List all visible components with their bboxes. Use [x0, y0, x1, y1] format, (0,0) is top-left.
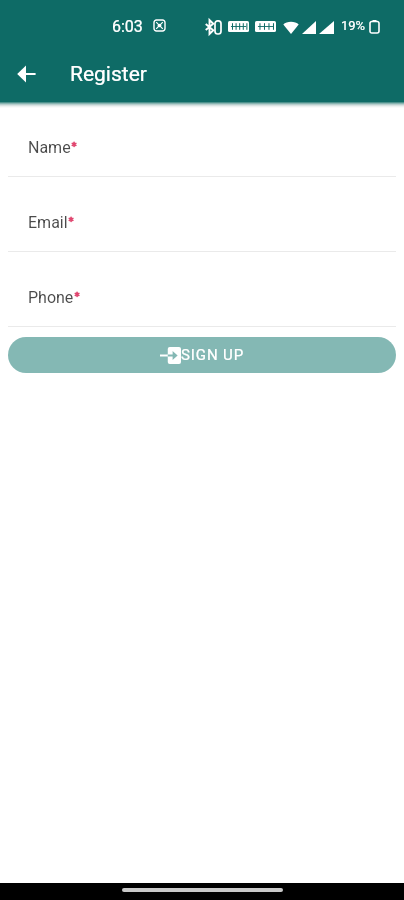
staticText: 19%	[341, 18, 366, 33]
staticText: SIGN UP	[181, 346, 245, 364]
staticText: Register	[70, 62, 147, 87]
button[interactable]: Phone	[28, 268, 376, 326]
staticText: Phone	[28, 288, 74, 307]
button[interactable]: Name	[28, 118, 376, 176]
button[interactable]: Home	[122, 888, 283, 892]
button[interactable]: Back	[6, 54, 46, 94]
staticText: 6:03	[112, 17, 143, 36]
staticText: Name	[28, 138, 71, 157]
button[interactable]: SIGN UP	[8, 337, 396, 373]
button[interactable]: Email	[28, 193, 376, 251]
staticText: Email	[28, 213, 68, 232]
